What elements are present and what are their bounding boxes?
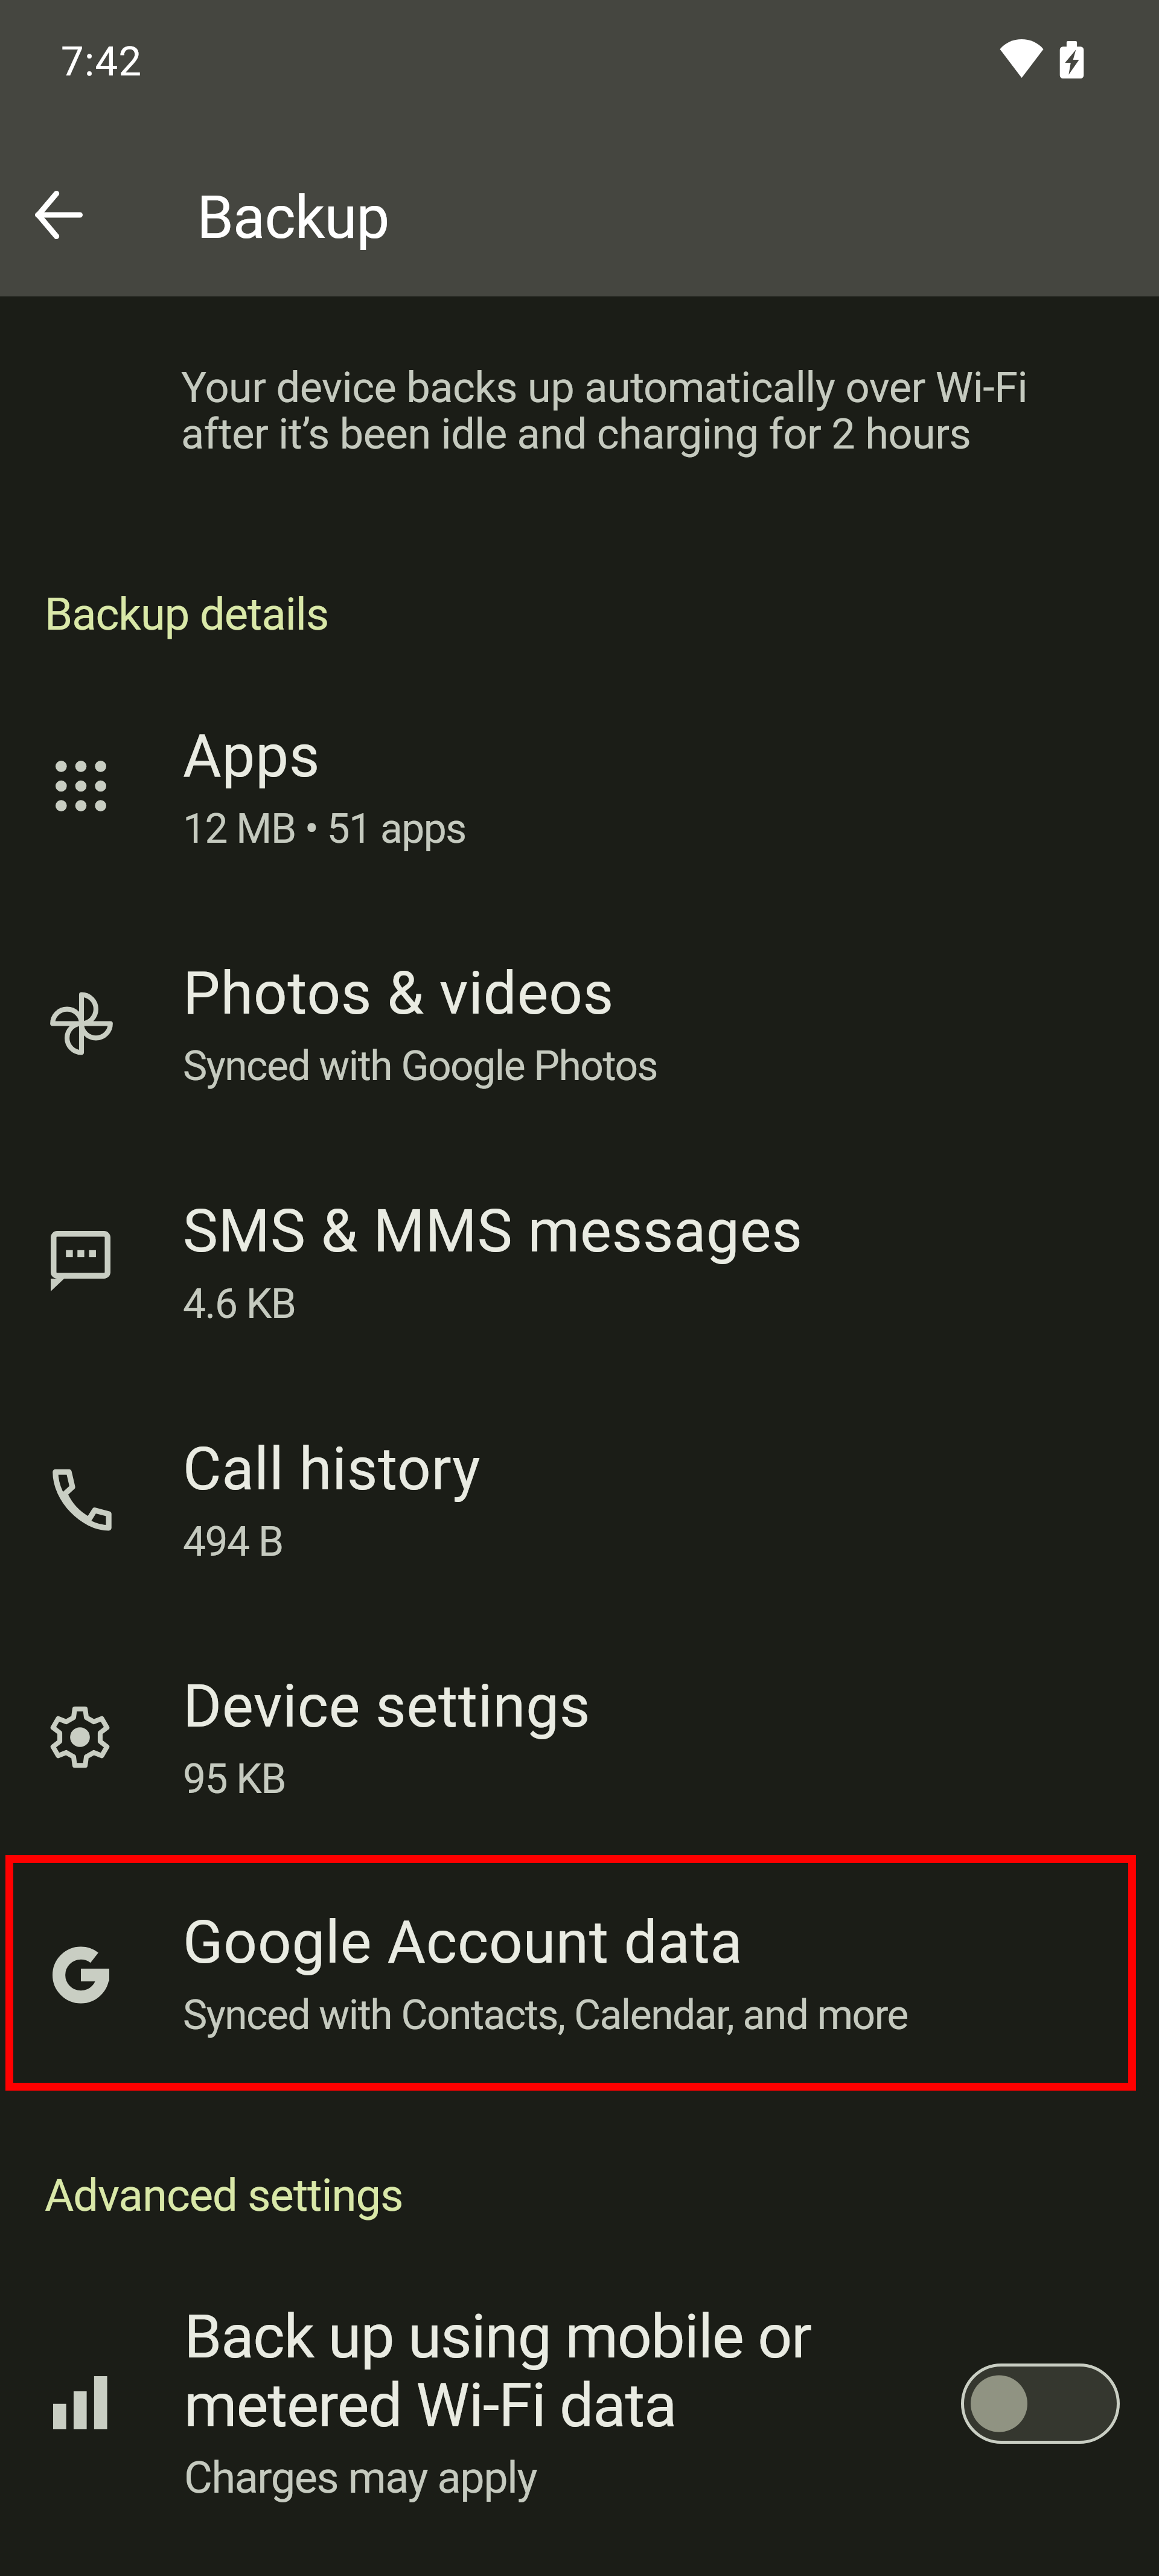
staticText: 95 KB — [183, 1755, 286, 1803]
button[interactable] — [0, 681, 1159, 919]
staticText: Synced with Google Photos — [183, 1042, 657, 1090]
staticText: Apps — [183, 721, 321, 790]
button[interactable] — [0, 1631, 1159, 1869]
button[interactable] — [0, 1156, 1159, 1394]
staticText: Device settings — [183, 1672, 591, 1740]
staticText: Back up using mobile or metered Wi-Fi da… — [184, 2301, 811, 2441]
staticText: Photos & videos — [183, 959, 615, 1028]
staticText: Synced with Contacts, Calendar, and more — [183, 1991, 908, 2039]
staticText: 494 B — [183, 1518, 283, 1565]
staticText: SMS & MMS messages — [183, 1197, 803, 1265]
button[interactable]: Back — [10, 167, 107, 263]
staticText: Charges may apply — [184, 2452, 537, 2503]
button[interactable] — [0, 2270, 1159, 2523]
staticText: Advanced settings — [45, 2169, 403, 2222]
staticText: 7:42 — [61, 38, 142, 85]
button[interactable] — [0, 1394, 1159, 1632]
button[interactable] — [0, 1867, 1159, 2105]
staticText: Backup — [197, 183, 389, 252]
button[interactable] — [0, 918, 1159, 1156]
staticText: Google Account data — [183, 1908, 743, 1977]
button[interactable]: Toggle backup over mobile data — [961, 2363, 1120, 2444]
staticText: Call history — [183, 1434, 481, 1503]
staticText: 12 MB • 51 apps — [183, 805, 466, 852]
staticText: 4.6 KB — [183, 1280, 296, 1328]
staticText: Your device backs up automatically over … — [181, 363, 1028, 459]
staticText: Backup details — [45, 588, 329, 641]
